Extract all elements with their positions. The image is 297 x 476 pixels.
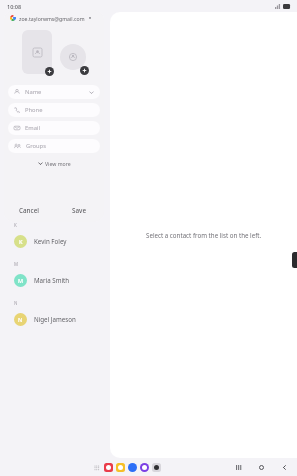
button[interactable]: App: [104, 463, 113, 472]
staticText: zoe.taylorwms@gmail.com: [19, 15, 85, 22]
button[interactable]: Cancel: [4, 198, 54, 222]
button[interactable]: K: [0, 230, 108, 252]
staticText: N: [14, 300, 18, 306]
button[interactable]: zoe.taylorwms@gmail.com: [4, 10, 104, 26]
staticText: Save: [72, 206, 86, 215]
button[interactable]: Save: [54, 198, 104, 222]
button[interactable]: Back: [280, 463, 289, 472]
button[interactable]: App: [140, 463, 149, 472]
staticText: Maria Smith: [34, 276, 70, 284]
button[interactable]: Add: [80, 66, 89, 75]
button[interactable]: App: [116, 463, 125, 472]
button[interactable]: N: [0, 308, 108, 330]
staticText: M: [14, 261, 19, 267]
button[interactable]: Add photo: [22, 30, 52, 74]
staticText: Name: [25, 88, 42, 96]
staticText: N: [18, 316, 23, 323]
staticText: Email: [25, 124, 40, 132]
staticText: Phone: [25, 106, 43, 114]
button[interactable]: Email: [8, 121, 100, 135]
button[interactable]: Phone: [8, 103, 100, 117]
staticText: M: [18, 277, 24, 284]
button[interactable]: Groups: [8, 139, 100, 153]
staticText: Nigel Jameson: [34, 315, 76, 323]
staticText: 10:08: [7, 3, 22, 10]
staticText: Groups: [26, 142, 46, 150]
button[interactable]: M: [0, 269, 108, 291]
staticText: K: [14, 222, 17, 228]
button[interactable]: Recents: [234, 463, 243, 472]
button[interactable]: View more: [4, 158, 104, 168]
staticText: Kevin Foley: [34, 237, 67, 245]
staticText: Cancel: [19, 206, 39, 215]
button[interactable]: Home: [257, 463, 266, 472]
staticText: K: [19, 238, 23, 245]
button[interactable]: Add: [45, 67, 54, 76]
button[interactable]: Name: [8, 85, 100, 99]
staticText: Select a contact from the list on the le…: [146, 231, 262, 239]
button[interactable]: App: [128, 463, 137, 472]
button[interactable]: App: [152, 463, 161, 472]
button[interactable]: All apps: [94, 465, 100, 471]
button[interactable]: Add avatar: [60, 44, 86, 70]
staticText: View more: [45, 160, 71, 167]
